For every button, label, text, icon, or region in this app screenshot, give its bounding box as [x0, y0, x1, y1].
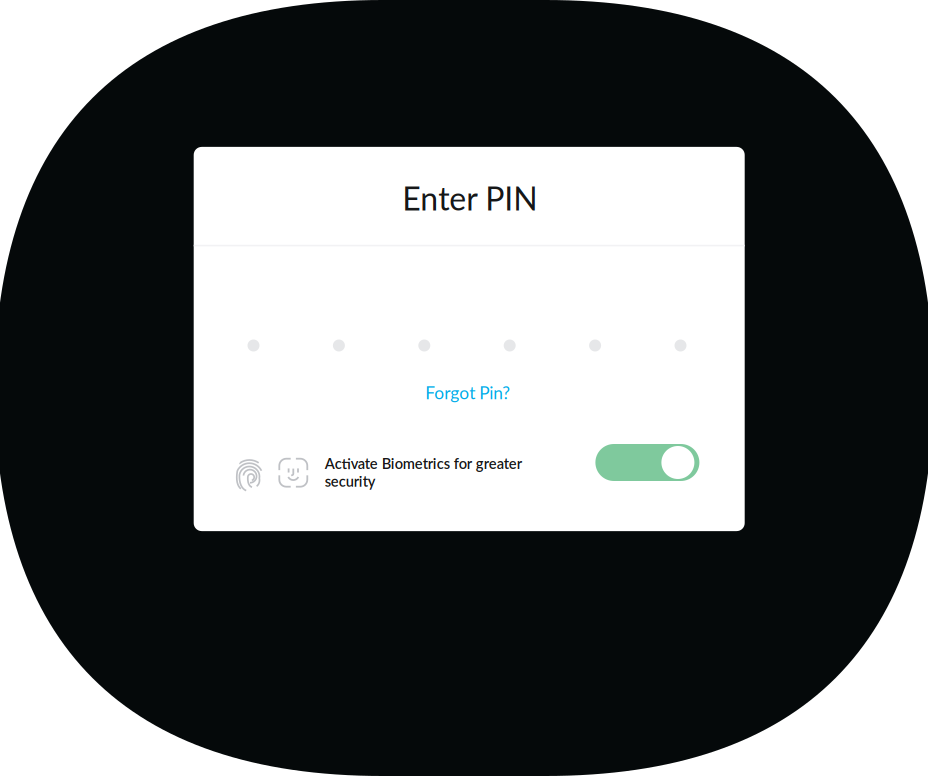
- staticText: Activate Biometrics for greater security: [325, 455, 522, 490]
- staticText: Enter PIN: [402, 179, 537, 217]
- button[interactable]: Forgot Pin?: [192, 381, 743, 403]
- button[interactable]: Activate Biometrics: [595, 444, 699, 481]
- staticText: Forgot Pin?: [425, 382, 510, 403]
